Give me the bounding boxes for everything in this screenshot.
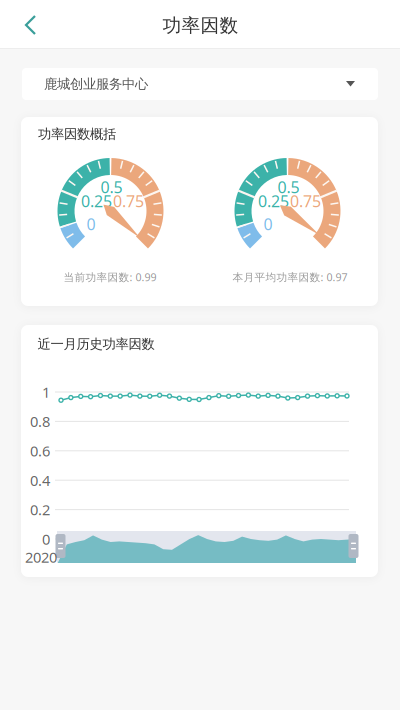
staticText: 0.2 (30, 500, 50, 519)
staticText: 0 (86, 213, 95, 235)
staticText: 本月平均功率因数: 0.97 (232, 270, 347, 284)
staticText: 0 (263, 213, 272, 235)
staticText: 0.5 (100, 176, 122, 198)
staticText: 0.25 (81, 190, 112, 212)
staticText: 0 (42, 529, 50, 549)
staticText: 功率因数概括 (38, 126, 116, 142)
staticText: 0.5 (277, 176, 299, 198)
staticText: 0.6 (30, 441, 50, 461)
staticText: 1 (42, 382, 50, 402)
button[interactable]: Back (9, 3, 53, 47)
staticText: 0.75 (290, 190, 321, 212)
staticText: 2020 (25, 547, 57, 567)
button[interactable]: 鹿城创业服务中心 (22, 68, 378, 100)
staticText: 当前功率因数: 0.99 (63, 270, 156, 284)
staticText: 0.25 (258, 190, 289, 212)
staticText: 0.8 (30, 412, 50, 431)
staticText: 0.75 (113, 190, 144, 212)
staticText: 鹿城创业服务中心 (44, 76, 148, 92)
staticText: 近一月历史功率因数 (37, 336, 154, 352)
staticText: 0.4 (30, 470, 50, 490)
staticText: 功率因数 (162, 14, 238, 37)
